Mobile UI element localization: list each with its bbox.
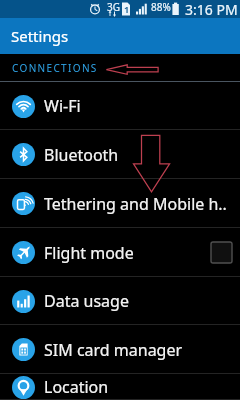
staticText: 3G bbox=[107, 0, 120, 14]
button[interactable]: Settings bbox=[0, 18, 240, 54]
staticText: Settings bbox=[11, 26, 69, 46]
staticText: CONNECTIONS bbox=[12, 61, 98, 75]
staticText: Flight mode bbox=[44, 242, 211, 264]
staticText: Wi-Fi bbox=[44, 95, 232, 117]
staticText: 3:16 PM bbox=[185, 0, 238, 18]
button[interactable]: Location bbox=[0, 374, 240, 400]
button[interactable]: Bluetooth bbox=[0, 130, 240, 179]
button[interactable]: Data usage bbox=[0, 277, 240, 325]
staticText: SIM card manager bbox=[44, 339, 232, 361]
staticText: Location bbox=[44, 376, 232, 398]
button[interactable]: SIM card manager bbox=[0, 325, 240, 374]
staticText: Tethering and Mobile h.. bbox=[44, 193, 232, 215]
button[interactable]: Wi-Fi bbox=[0, 82, 240, 130]
staticText: 1 bbox=[124, 3, 130, 15]
button[interactable]: Flight mode toggle bbox=[211, 242, 232, 263]
button[interactable]: Flight mode bbox=[0, 228, 240, 277]
staticText: Data usage bbox=[44, 290, 232, 312]
button[interactable]: CONNECTIONS bbox=[0, 54, 240, 82]
staticText: 88% bbox=[151, 0, 171, 14]
button[interactable]: Tethering and Mobile h.. bbox=[0, 179, 240, 228]
staticText: Bluetooth bbox=[44, 144, 232, 166]
